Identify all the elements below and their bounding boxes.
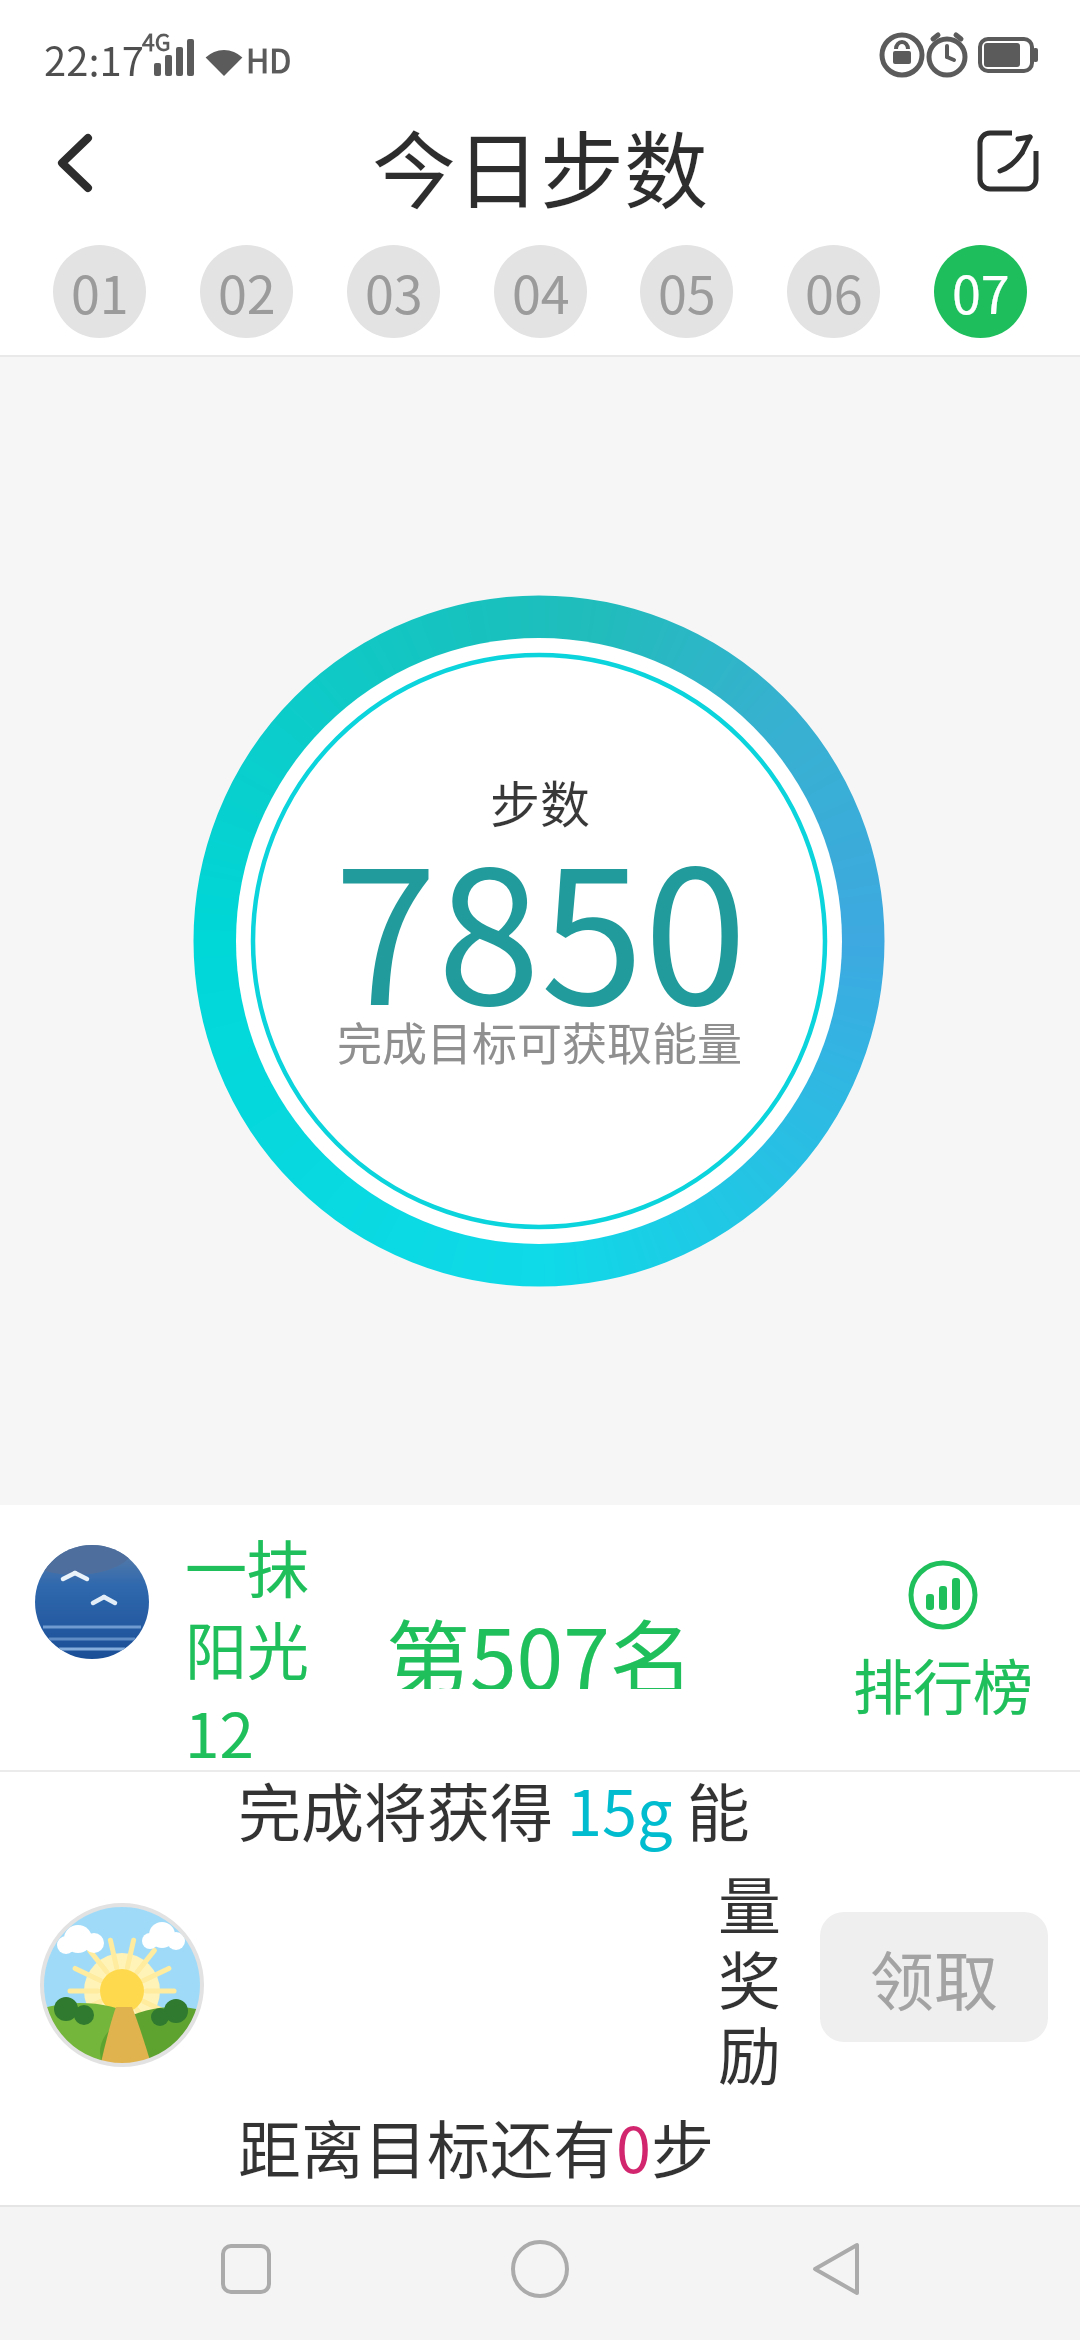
button[interactable] bbox=[740, 2220, 930, 2320]
staticText: 4G bbox=[142, 24, 171, 57]
staticText: 一抹 阳光 12 bbox=[185, 1521, 310, 1776]
button[interactable]: 04 bbox=[494, 245, 587, 338]
button[interactable]: 排行榜 bbox=[845, 1555, 1050, 1735]
staticText: 03 bbox=[365, 254, 423, 329]
button[interactable]: 07 bbox=[934, 245, 1027, 338]
staticText: 领取 bbox=[870, 1931, 998, 2024]
staticText: 第507名 bbox=[386, 1594, 694, 1689]
staticText: 05 bbox=[658, 254, 716, 329]
button[interactable]: 一抹 阳光 12 bbox=[0, 1505, 1080, 1770]
staticText: 完成将获得 15g 能 bbox=[238, 1763, 750, 1854]
staticText: 排行榜 bbox=[853, 1640, 1033, 1727]
staticText: 步数 bbox=[490, 765, 590, 837]
staticText: HD bbox=[246, 36, 292, 82]
staticText: 完成目标可获取能量 bbox=[337, 1009, 743, 1074]
button[interactable]: 01 bbox=[53, 245, 146, 338]
button[interactable] bbox=[150, 2220, 340, 2320]
staticText: 今日步数 bbox=[372, 105, 709, 220]
button[interactable] bbox=[445, 2220, 635, 2320]
staticText: 量 奖 励 bbox=[718, 1856, 781, 2097]
staticText: 22:17 bbox=[44, 30, 144, 88]
button[interactable]: 领取 bbox=[820, 1912, 1048, 2042]
button[interactable]: 02 bbox=[200, 245, 293, 338]
staticText: 07 bbox=[952, 254, 1010, 329]
staticText: 02 bbox=[218, 254, 276, 329]
staticText: 04 bbox=[512, 254, 570, 329]
staticText: 01 bbox=[71, 254, 129, 329]
button[interactable]: 06 bbox=[787, 245, 880, 338]
button[interactable] bbox=[960, 115, 1055, 205]
button[interactable]: 05 bbox=[640, 245, 733, 338]
staticText: 7850 bbox=[334, 789, 747, 1058]
staticText: 距离目标还有0步 bbox=[238, 2100, 714, 2191]
button[interactable] bbox=[30, 118, 120, 208]
button[interactable]: 03 bbox=[347, 245, 440, 338]
staticText: 06 bbox=[805, 254, 863, 329]
